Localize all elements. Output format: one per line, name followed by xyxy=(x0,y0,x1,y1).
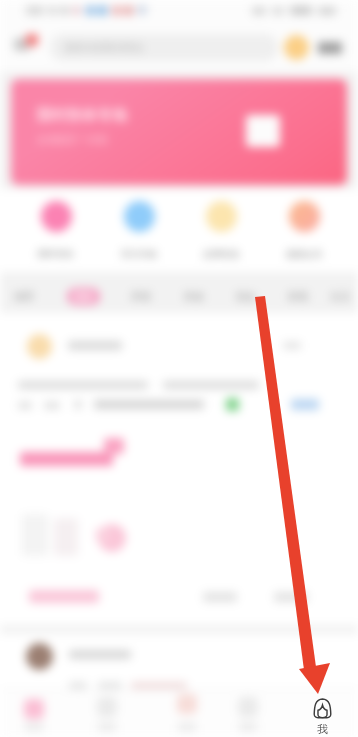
button[interactable]: 超级会员 xyxy=(264,201,344,263)
staticText: 穿搭 xyxy=(131,290,151,303)
button[interactable]: 搜索你想要的商品 xyxy=(50,34,278,61)
button[interactable]: 百亿补贴 xyxy=(99,201,179,263)
staticText: 品牌优选 xyxy=(203,248,239,259)
button[interactable]: Tab xyxy=(4,690,64,737)
button[interactable]: Camera xyxy=(12,33,42,63)
staticText: 美食 xyxy=(184,290,204,303)
button[interactable]: Tab xyxy=(218,690,278,737)
staticText: 超级会员 xyxy=(286,248,322,259)
button[interactable]: Tab xyxy=(157,690,217,737)
button[interactable]: 美食 xyxy=(169,283,219,309)
staticText: 彩妆 xyxy=(236,290,256,303)
button[interactable]: 穿搭 xyxy=(116,283,166,309)
button[interactable]: 推荐 xyxy=(0,283,49,309)
button[interactable]: 直播 xyxy=(58,283,108,309)
button[interactable]: 生活 xyxy=(315,283,358,309)
button[interactable]: Profile xyxy=(284,35,309,60)
staticText: 我 xyxy=(317,722,328,736)
staticText: 限时秒杀 xyxy=(38,248,74,259)
staticText: 影视 xyxy=(288,290,308,303)
staticText: 直播 xyxy=(73,290,93,303)
button[interactable]: 我 xyxy=(307,698,337,737)
staticText: 推荐 xyxy=(14,290,34,303)
staticText: 全场低至 1 折起 xyxy=(37,132,108,146)
staticText: 限时秒杀专场 xyxy=(37,106,127,125)
button[interactable]: 品牌优选 xyxy=(181,201,261,263)
button[interactable]: Tab xyxy=(77,690,137,737)
button[interactable]: 限时秒杀 xyxy=(16,201,96,263)
button[interactable]: 限时秒杀专场 xyxy=(11,79,347,185)
button[interactable]: More xyxy=(314,36,346,60)
button[interactable]: 影视 xyxy=(273,283,323,309)
staticText: 百亿补贴 xyxy=(121,248,157,259)
button[interactable]: 彩妆 xyxy=(221,283,271,309)
